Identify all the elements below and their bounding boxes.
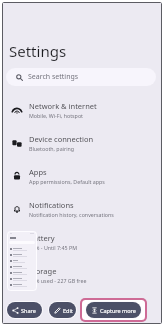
button[interactable]: Apps: [2, 159, 162, 193]
staticText: Notifications: [29, 200, 74, 210]
staticText: Battery: [29, 233, 55, 243]
button[interactable]: Search settings: [6, 68, 156, 86]
staticText: Bluetooth, pairing: [29, 145, 75, 152]
staticText: Mobile, Wi-Fi, hotspot: [29, 112, 83, 119]
staticText: Share: [21, 307, 36, 314]
staticText: Edit: [63, 307, 73, 314]
staticText: App permissions, Default apps: [29, 178, 105, 185]
button[interactable]: Share: [7, 302, 42, 318]
staticText: Network & internet: [29, 101, 97, 111]
staticText: Search settings: [28, 72, 79, 82]
staticText: Notification history, conversations: [29, 211, 114, 218]
button[interactable]: Screenshot preview: [7, 231, 37, 291]
staticText: Capture more: [100, 307, 136, 314]
staticText: Storage: [29, 266, 57, 276]
button[interactable]: Device connection: [2, 126, 162, 160]
button[interactable]: Edit: [49, 302, 76, 318]
staticText: Device connection: [29, 134, 94, 144]
staticText: 25% used - 227 GB free: [29, 277, 87, 284]
button[interactable]: Network & internet: [2, 93, 162, 127]
staticText: 72% - Until 7:45 PM: [29, 244, 77, 251]
button[interactable]: Notifications: [2, 192, 162, 226]
button[interactable]: Battery: [2, 225, 162, 259]
staticText: Settings: [9, 41, 67, 61]
button[interactable]: Capture more: [86, 302, 141, 318]
button[interactable]: Storage: [2, 258, 162, 292]
staticText: Apps: [29, 167, 47, 177]
